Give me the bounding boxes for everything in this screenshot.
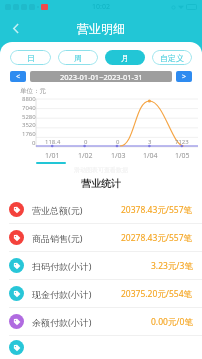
button[interactable]: 营业总额(元): [0, 196, 202, 223]
staticText: 自定义: [160, 53, 184, 63]
staticText: 20375.20元/554笔: [121, 288, 193, 300]
staticText: 2023-01-01~2023-01-31: [60, 72, 143, 82]
button[interactable]: 扫码付款(小计): [0, 252, 202, 279]
staticText: 单位：元: [20, 87, 46, 95]
button[interactable]: 余额付款(小计): [0, 308, 202, 335]
staticText: 7040: [22, 104, 36, 112]
staticText: 滑动图表可查看数据: [0, 166, 202, 174]
button[interactable]: 自定义: [152, 50, 192, 65]
button[interactable]: 商品销售(元): [0, 224, 202, 251]
button[interactable]: Next: [176, 71, 192, 82]
button[interactable]: [0, 336, 202, 359]
staticText: 118.4: [45, 138, 61, 146]
staticText: 10:02: [92, 2, 110, 12]
staticText: 8800: [22, 95, 36, 103]
staticText: 营业统计: [0, 177, 202, 190]
staticText: 3520: [22, 121, 36, 129]
staticText: 5280: [22, 113, 36, 121]
staticText: 1/04: [143, 151, 158, 161]
staticText: 月: [121, 53, 129, 63]
staticText: 0: [84, 138, 88, 146]
button[interactable]: 周: [58, 50, 98, 65]
staticText: 余额付款(小计): [32, 316, 92, 328]
staticText: 扫码付款(小计): [32, 260, 92, 272]
staticText: 营业明细: [77, 21, 125, 36]
staticText: 1/03: [111, 151, 126, 161]
staticText: 周: [74, 53, 82, 63]
staticText: 1760: [22, 130, 36, 138]
staticText: 1/01: [45, 151, 60, 161]
staticText: 3.23元/3笔: [151, 260, 193, 272]
staticText: 0: [116, 138, 120, 146]
staticText: 20378.43元/557笔: [121, 204, 193, 216]
staticText: 营业总额(元): [32, 204, 83, 216]
staticText: 1/05: [175, 151, 190, 161]
button[interactable]: Previous: [10, 71, 26, 82]
staticText: 20278.43元/557笔: [121, 232, 193, 244]
staticText: 0: [32, 139, 36, 147]
staticText: 现金付款(小计): [32, 288, 92, 300]
staticText: 7123: [175, 138, 189, 146]
button[interactable]: 日: [10, 50, 51, 65]
staticText: 1/02: [78, 151, 93, 161]
button[interactable]: 2023-01-01~2023-01-31: [30, 71, 172, 82]
button[interactable]: 月: [105, 50, 145, 65]
staticText: 商品销售(元): [32, 232, 83, 244]
staticText: 日: [27, 53, 35, 63]
button[interactable]: Back: [4, 16, 28, 40]
staticText: <: [16, 72, 21, 82]
staticText: 3: [148, 138, 152, 146]
staticText: >: [182, 72, 187, 82]
staticText: 0.00元/0笔: [151, 316, 193, 328]
button[interactable]: 现金付款(小计): [0, 280, 202, 307]
